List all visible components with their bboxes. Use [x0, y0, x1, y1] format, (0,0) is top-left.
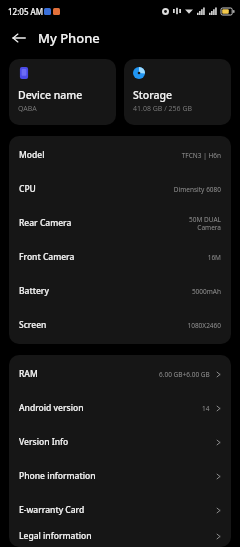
staticText: 1080X2460 — [187, 321, 221, 330]
staticText: Battery — [19, 285, 49, 297]
staticText: 16M — [207, 253, 221, 262]
button[interactable]: E-warranty Card — [9, 493, 231, 527]
staticText: Storage — [133, 88, 172, 102]
button[interactable]: Model — [9, 138, 231, 172]
button[interactable]: Device name — [9, 59, 116, 125]
staticText: QABA — [18, 104, 37, 114]
staticText: E-warranty Card — [19, 504, 85, 516]
staticText: 5000mAh — [191, 287, 221, 296]
button[interactable]: Back — [6, 25, 32, 51]
button[interactable]: Battery — [9, 274, 231, 308]
button[interactable]: Android version — [9, 391, 231, 425]
staticText: Front Camera — [19, 251, 75, 263]
staticText: 14 — [202, 404, 210, 413]
button[interactable]: Front Camera — [9, 240, 231, 274]
button[interactable]: Legal information — [9, 527, 231, 545]
staticText: Android version — [19, 402, 84, 414]
button[interactable]: Rear Camera — [9, 206, 231, 240]
button[interactable]: Version Info — [9, 425, 231, 459]
staticText: TFCN3 | H6n — [181, 151, 221, 160]
staticText: Phone information — [19, 470, 96, 482]
staticText: CPU — [19, 183, 36, 195]
button[interactable]: Screen — [9, 308, 231, 342]
staticText: Device name — [18, 88, 83, 102]
staticText: Rear Camera — [19, 217, 72, 229]
staticText: My Phone — [38, 29, 100, 47]
staticText: 6.00 GB+6.00 GB — [159, 370, 210, 379]
staticText: Model — [19, 149, 45, 161]
button[interactable]: Storage — [124, 59, 231, 125]
staticText: RAM — [19, 368, 38, 380]
staticText: Dimensity 6080 — [173, 185, 221, 194]
staticText: 50M DUAL Camera — [188, 215, 221, 232]
staticText: Screen — [19, 319, 47, 331]
staticText: 12:05 AM — [8, 6, 44, 17]
staticText: Legal information — [19, 530, 92, 542]
button[interactable]: RAM — [9, 357, 231, 391]
button[interactable]: CPU — [9, 172, 231, 206]
button[interactable]: Phone information — [9, 459, 231, 493]
staticText: 41.08 GB / 256 GB — [133, 104, 193, 114]
staticText: Version Info — [19, 436, 69, 448]
